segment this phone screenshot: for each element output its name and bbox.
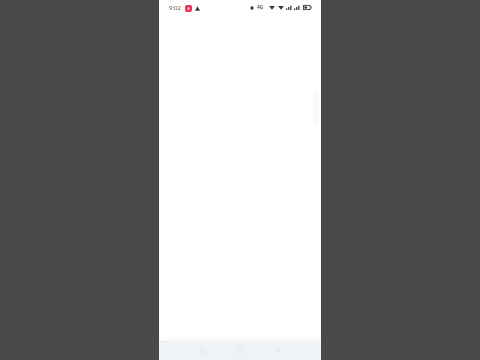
staticText: 4G <box>257 4 264 11</box>
staticText: 9:02 <box>169 4 181 12</box>
